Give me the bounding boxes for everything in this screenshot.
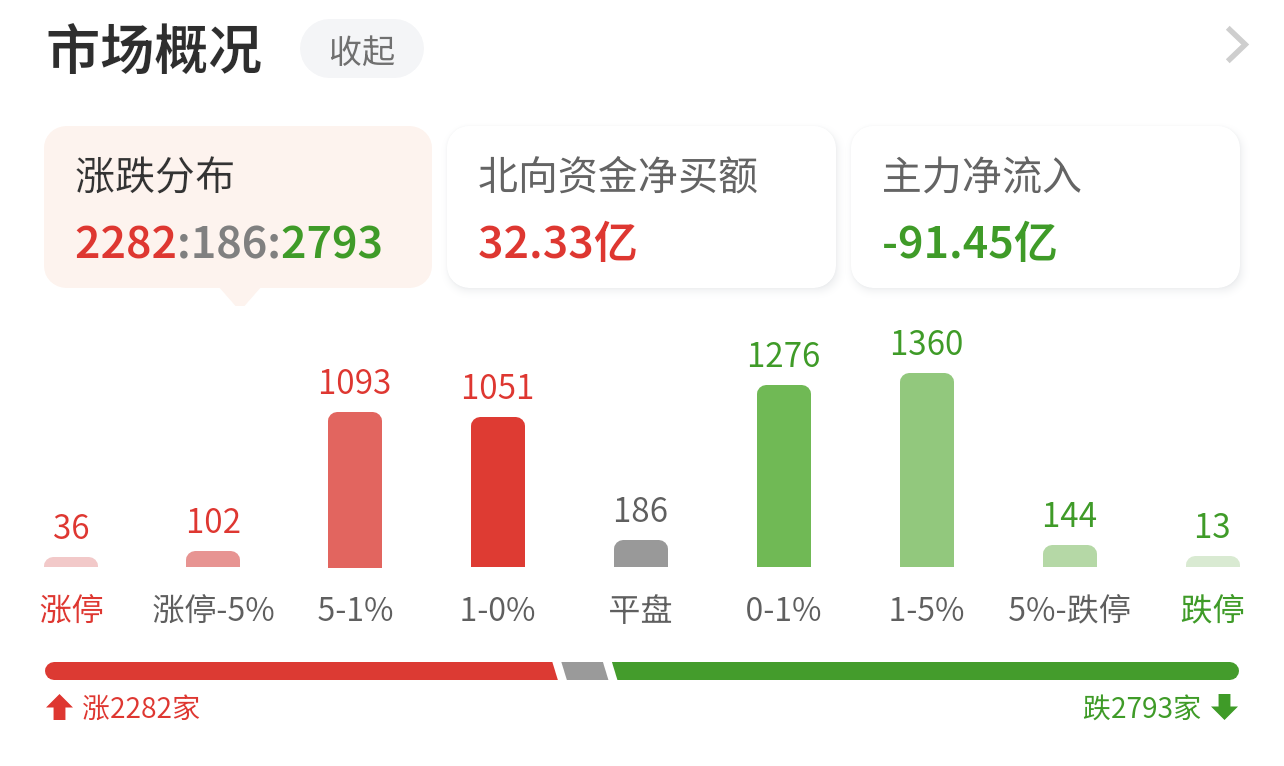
staticText: 涨停-5% — [152, 584, 275, 630]
staticText: 1-5% — [888, 584, 965, 630]
staticText: 1276 — [747, 329, 821, 377]
button[interactable]: 主力净流入 — [851, 126, 1240, 288]
staticText: 收起 — [329, 25, 395, 73]
staticText: 主力净流入 — [882, 144, 1082, 202]
staticText: 186 — [613, 484, 668, 532]
staticText: 1093 — [318, 356, 392, 404]
staticText: 0-1% — [745, 584, 822, 630]
staticText: 北向资金净买额 — [478, 144, 758, 202]
staticText: 1051 — [461, 361, 535, 409]
button[interactable]: 涨跌分布 — [44, 126, 432, 288]
staticText: 144 — [1042, 489, 1097, 537]
staticText: 市场概况 — [46, 6, 262, 84]
staticText: 102 — [186, 495, 241, 543]
staticText: 5%-跌停 — [1008, 584, 1131, 630]
staticText: 涨跌分布 — [75, 144, 235, 202]
button[interactable]: 收起 — [300, 19, 424, 78]
button[interactable]: 展开详情 — [1194, 0, 1284, 90]
staticText: 平盘 — [608, 584, 673, 630]
staticText: 1-0% — [459, 584, 536, 630]
staticText: -91.45亿 — [882, 207, 1058, 271]
staticText: 跌停 — [1180, 584, 1245, 630]
staticText: 涨2282家 — [82, 686, 201, 727]
staticText: 跌2793家 — [1083, 686, 1202, 727]
button[interactable]: 北向资金净买额 — [447, 126, 836, 288]
staticText: 2282:186:2793 — [75, 207, 384, 271]
staticText: 1360 — [890, 317, 964, 365]
staticText: 5-1% — [317, 584, 394, 630]
staticText: 13 — [1194, 500, 1231, 548]
staticText: 32.33亿 — [478, 207, 638, 271]
staticText: 涨停 — [39, 584, 104, 630]
staticText: 36 — [53, 501, 90, 549]
